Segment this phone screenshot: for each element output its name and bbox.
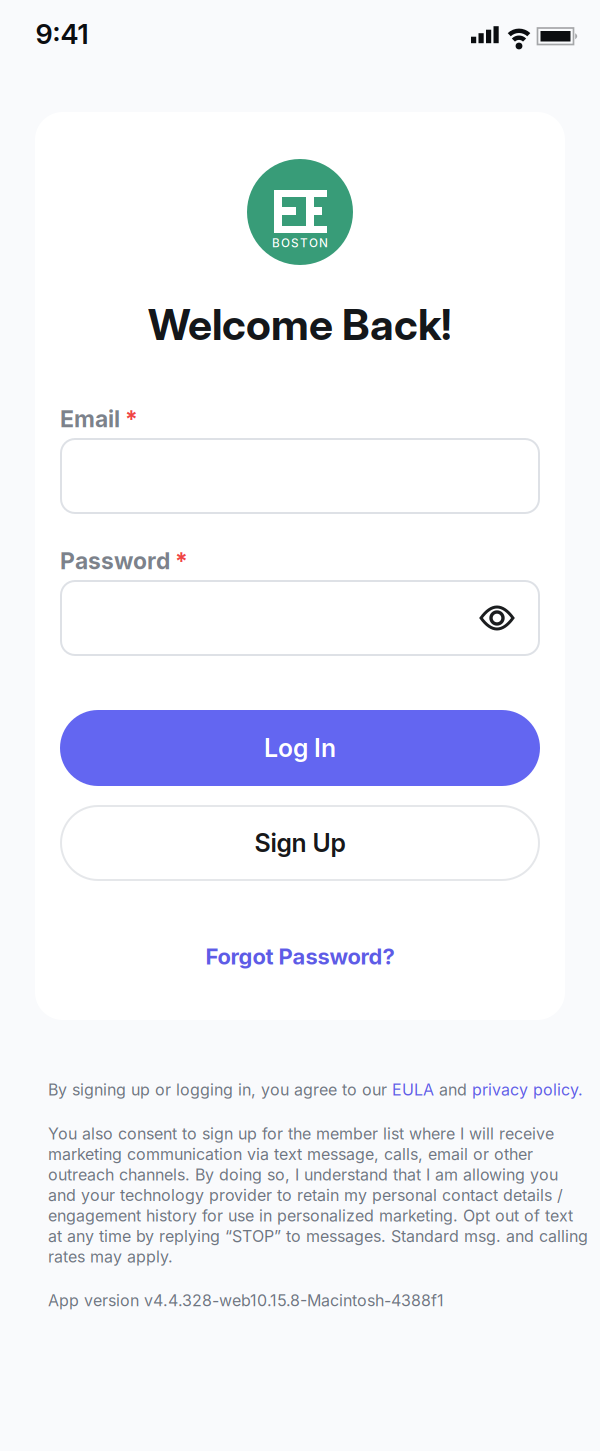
staticText: and (434, 1080, 472, 1099)
staticText: privacy policy. (472, 1080, 583, 1099)
staticText: and your technology provider to retain m… (48, 1185, 563, 1205)
staticText: Email (60, 405, 120, 433)
staticText: marketing communication via text message… (48, 1144, 533, 1164)
staticText: engagement history for use in personaliz… (48, 1206, 573, 1225)
staticText: 9:41 (35, 17, 88, 51)
staticText: EULA (392, 1080, 434, 1099)
staticText: rates may apply. (48, 1247, 173, 1266)
staticText: Sign Up (254, 828, 345, 858)
staticText: Password (60, 547, 170, 575)
staticText: B O S T O N (272, 236, 328, 250)
staticText: at any time by replying “STOP” to messag… (48, 1226, 588, 1246)
staticText: outreach channels. By doing so, I unders… (48, 1165, 558, 1184)
staticText: Forgot Password? (205, 943, 394, 970)
staticText: * (125, 405, 138, 433)
staticText: * (175, 547, 188, 575)
staticText: Welcome Back! (148, 299, 452, 350)
staticText: By signing up or logging in, you agree t… (48, 1080, 392, 1099)
staticText: Log In (264, 733, 336, 763)
staticText: You also consent to sign up for the memb… (48, 1124, 554, 1143)
staticText: App version v4.4.328-web10.15.8-Macintos… (48, 1291, 444, 1310)
